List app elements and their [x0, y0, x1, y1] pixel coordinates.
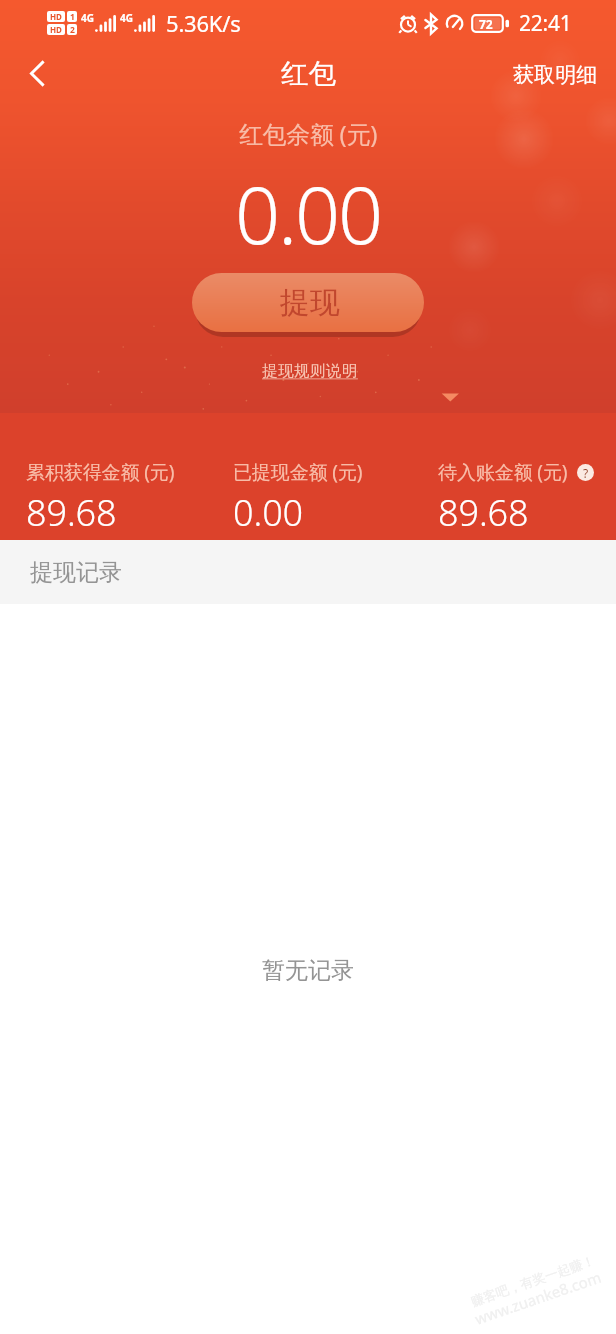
staticText: 红包余额 (元): [0, 117, 616, 150]
staticText: 1: [70, 11, 75, 22]
button[interactable]: Back: [14, 50, 60, 96]
staticText: 提现: [280, 284, 340, 322]
staticText: 4G: [81, 11, 94, 25]
button[interactable]: Help: [577, 464, 594, 481]
staticText: 4G: [120, 11, 133, 25]
staticText: 提现规则说明: [262, 361, 358, 380]
staticText: www.zuanke8.com: [472, 1266, 604, 1329]
staticText: ?: [583, 465, 589, 481]
staticText: 89.68: [438, 488, 529, 537]
staticText: 红包: [281, 57, 336, 92]
staticText: 2: [70, 24, 75, 35]
staticText: 暂无记录: [262, 956, 354, 985]
staticText: 赚客吧，有奖一起赚！: [469, 1252, 597, 1309]
button[interactable]: 提现规则说明: [256, 357, 364, 384]
staticText: 72: [479, 16, 493, 32]
staticText: 22:41: [519, 9, 572, 38]
button[interactable]: 获取明细: [493, 52, 616, 98]
staticText: 待入账金额 (元): [438, 459, 568, 485]
staticText: 累积获得金额 (元): [26, 459, 175, 485]
staticText: HD: [50, 24, 62, 35]
staticText: 提现记录: [30, 558, 122, 587]
staticText: 0.00: [0, 160, 616, 268]
button[interactable]: 提现: [192, 273, 424, 332]
staticText: 5.36K/s: [166, 8, 241, 38]
staticText: 89.68: [26, 488, 117, 537]
staticText: HD: [50, 11, 62, 22]
staticText: 已提现金额 (元): [233, 459, 363, 485]
staticText: 获取明细: [513, 62, 598, 88]
staticText: 0.00: [233, 488, 304, 537]
